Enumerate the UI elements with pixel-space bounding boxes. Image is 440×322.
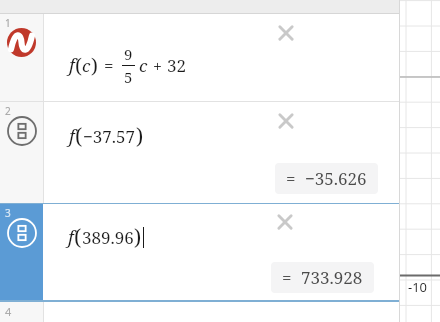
staticText: 2 [5,104,11,118]
staticText: −37.57 [83,125,136,148]
button[interactable]: = [275,163,378,194]
staticText: f [68,225,74,250]
button[interactable]: 2 [0,102,400,203]
staticText: 4 [5,304,12,319]
staticText: ) [134,223,142,252]
staticText: −35.626 [305,167,367,190]
staticText: = [104,54,114,77]
staticText: ( [75,52,82,79]
staticText: ( [75,122,83,151]
staticText: c [139,54,148,77]
staticText: f [69,124,75,149]
staticText: 389.96 [82,226,134,249]
button[interactable]: = [271,262,374,293]
staticText: 9 [124,44,133,64]
button[interactable]: Delete expression 2 [275,110,297,132]
staticText: ( [74,223,82,252]
staticText: c [82,54,91,77]
staticText: + [153,55,162,77]
staticText: = [282,266,292,289]
staticText: 32 [167,54,187,77]
staticText: = [286,167,296,190]
staticText: f [69,53,75,78]
staticText: 1 [5,16,11,30]
button[interactable]: 1 [0,14,400,101]
staticText: 3 [5,206,11,220]
button[interactable]: 4 [0,302,400,322]
button[interactable]: Delete expression 3 [274,211,296,233]
staticText: 5 [124,67,133,87]
button[interactable]: Delete expression 1 [275,22,297,44]
staticText: -10 [408,278,428,296]
button[interactable]: 3 [0,204,400,300]
staticText: ) [91,52,98,79]
staticText: ) [136,122,144,151]
staticText: 733.928 [301,266,363,289]
